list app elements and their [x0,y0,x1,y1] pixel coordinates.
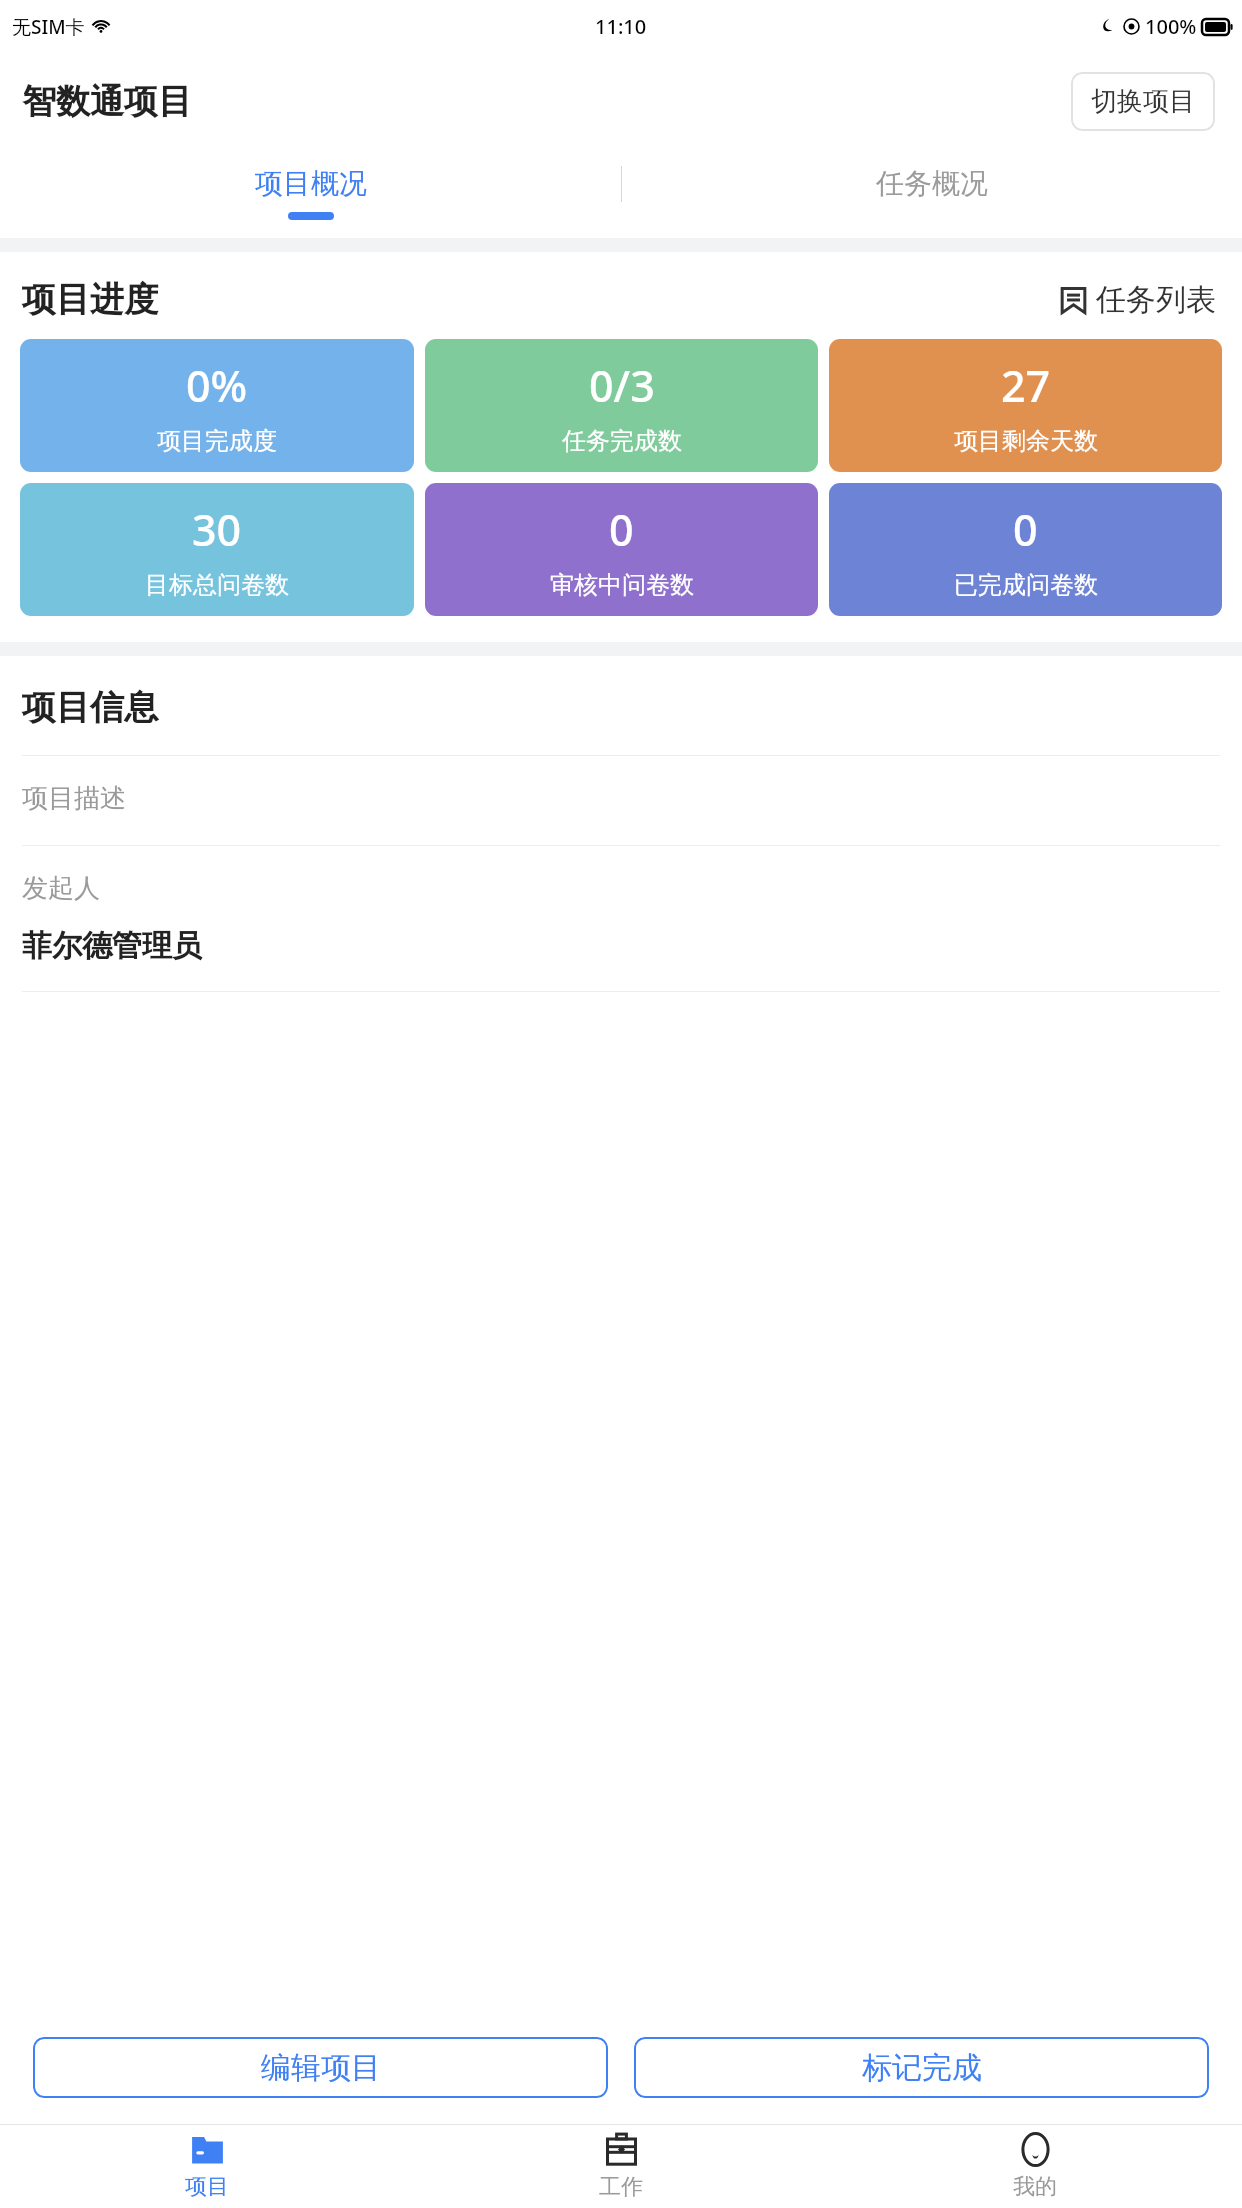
button[interactable]: 项目 [0,2125,414,2208]
button[interactable]: 任务概况 [621,150,1242,238]
staticText: 我的 [1013,2173,1057,2201]
staticText: 已完成问卷数 [954,570,1098,600]
staticText: 任务完成数 [562,426,682,456]
staticText: 审核中问卷数 [550,570,694,600]
staticText: 无SIM卡 [12,14,85,40]
staticText: 项目描述 [22,782,126,815]
button[interactable]: 0 [829,483,1222,616]
button[interactable]: 0% [20,339,414,472]
staticText: 项目完成度 [157,426,277,456]
staticText: 菲尔德管理员 [22,927,202,965]
staticText: 目标总问卷数 [145,570,289,600]
staticText: 项目 [185,2173,229,2201]
staticText: 项目进度 [22,278,158,321]
button[interactable]: 项目概况 [0,150,621,238]
button[interactable]: 切换项目 [1071,72,1215,131]
staticText: 0/3 [589,356,655,415]
staticText: 智数通项目 [22,80,192,123]
staticText: 工作 [599,2173,643,2201]
staticText: 100% [1145,13,1197,40]
staticText: 项目信息 [22,686,158,729]
staticText: 0 [1013,500,1038,559]
staticText: 标记完成 [862,2049,982,2087]
staticText: 发起人 [22,872,100,905]
staticText: 项目概况 [255,166,367,201]
staticText: 任务列表 [1096,281,1216,319]
staticText: 项目剩余天数 [954,426,1098,456]
button[interactable]: 标记完成 [634,2037,1209,2098]
button[interactable]: 编辑项目 [33,2037,608,2098]
staticText: 0% [186,356,248,415]
button[interactable]: 0/3 [425,339,818,472]
staticText: 编辑项目 [261,2049,381,2087]
staticText: 切换项目 [1091,85,1195,118]
staticText: 任务概况 [876,166,988,201]
button[interactable]: 30 [20,483,414,616]
staticText: 30 [192,500,242,559]
button[interactable]: 我的 [828,2125,1242,2208]
staticText: 0 [609,500,634,559]
button[interactable]: 工作 [414,2125,828,2208]
button[interactable]: 任务列表 [1060,281,1216,319]
staticText: 27 [1001,356,1051,415]
button[interactable]: 0 [425,483,818,616]
staticText: 11:10 [595,13,647,40]
button[interactable]: 27 [829,339,1222,472]
